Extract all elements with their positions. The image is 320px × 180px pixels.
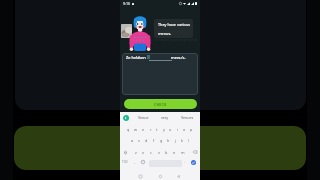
staticText: k <box>181 138 184 143</box>
staticText: f <box>153 138 155 143</box>
staticText: g <box>160 138 163 143</box>
staticText: . <box>184 159 186 164</box>
staticText: a <box>131 138 134 143</box>
staticText: CHECK <box>154 102 167 107</box>
staticText: e <box>142 127 145 132</box>
staticText: v <box>158 150 160 155</box>
staticText: Ze hebben <box>126 55 146 60</box>
staticText: l <box>188 138 189 143</box>
other: Gboard <box>123 115 129 121</box>
button[interactable]: Send <box>191 160 196 165</box>
staticText: menu's. <box>171 55 186 60</box>
staticText: Venues <box>181 115 194 120</box>
staticText: y <box>163 127 165 132</box>
staticText: i <box>177 127 178 132</box>
staticText: ?123 <box>122 160 128 164</box>
staticText: Venue <box>138 115 149 120</box>
button[interactable]: Home <box>159 175 162 178</box>
staticText: s <box>138 138 140 143</box>
staticText: h <box>167 138 170 143</box>
staticText: m <box>181 150 185 155</box>
staticText: o <box>183 127 186 132</box>
staticText: n <box>173 150 176 155</box>
staticText: t <box>156 127 158 132</box>
staticText: z <box>135 150 137 155</box>
staticText: They have various menus. <box>158 22 191 36</box>
staticText: x <box>142 150 145 155</box>
staticText: Ze hebben verschillende menu's. <box>155 38 199 42</box>
button[interactable]: Back <box>177 175 180 178</box>
staticText: j <box>175 138 176 143</box>
staticText: b <box>165 150 168 155</box>
button[interactable]: CHECK <box>124 99 197 109</box>
staticText: , <box>134 159 136 164</box>
staticText: very <box>161 115 169 120</box>
staticText: 9:16 <box>123 1 131 6</box>
staticText: q <box>127 127 130 132</box>
staticText: u <box>169 127 172 132</box>
staticText: c <box>150 150 152 155</box>
staticText: p <box>190 127 193 132</box>
staticText: d <box>145 138 148 143</box>
button[interactable]: Recent apps <box>139 175 142 178</box>
staticText: r <box>150 127 152 132</box>
staticText: w <box>134 127 137 132</box>
